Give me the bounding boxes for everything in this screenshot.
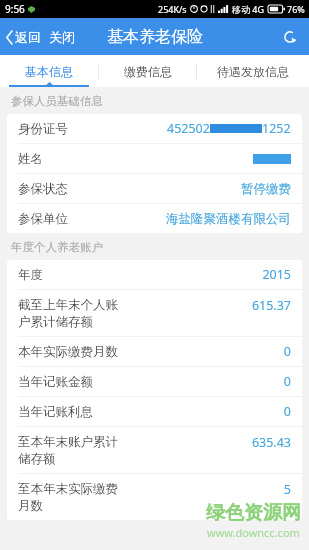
staticText: 参保状态 bbox=[18, 181, 68, 197]
staticText: 身份证号 bbox=[18, 121, 68, 137]
button[interactable]: 截至上年末个人账 户累计储存额 bbox=[7, 290, 302, 336]
staticText: 至本年末账户累计 储存额 bbox=[18, 434, 118, 466]
staticText: 暂停缴费 bbox=[241, 181, 291, 197]
staticText: 年度 bbox=[18, 267, 43, 283]
staticText: 参保单位 bbox=[18, 211, 68, 227]
staticText: 缴费信息 bbox=[124, 64, 172, 79]
button[interactable]: 缴费信息 bbox=[99, 55, 196, 87]
button[interactable]: 关闭 bbox=[45, 24, 79, 50]
staticText: 至本年末实际缴费 月数 bbox=[18, 481, 118, 513]
staticText: 当年记账利息 bbox=[18, 404, 93, 420]
staticText: 移动 4G bbox=[232, 3, 265, 15]
staticText: 姓名 bbox=[18, 151, 43, 167]
staticText: 0 bbox=[283, 373, 291, 390]
staticText: 615.37 bbox=[251, 297, 291, 314]
staticText: 本年实际缴费月数 bbox=[18, 344, 118, 360]
button[interactable]: 参保状态 bbox=[7, 174, 302, 203]
button[interactable]: 待遇发放信息 bbox=[197, 55, 309, 87]
staticText: 基本养老保险 bbox=[107, 27, 203, 47]
staticText: 基本信息 bbox=[25, 64, 73, 79]
staticText: www.downcc.com bbox=[207, 525, 300, 540]
button[interactable]: 当年记账利息 bbox=[7, 397, 302, 426]
staticText: 海盐隆聚酒楼有限公司 bbox=[166, 211, 291, 227]
button[interactable]: 身份证号 bbox=[7, 114, 302, 143]
staticText: 9:56 bbox=[5, 2, 25, 16]
staticText: 年度个人养老账户 bbox=[11, 240, 103, 254]
staticText: 76% bbox=[287, 3, 305, 15]
button[interactable]: 本年实际缴费月数 bbox=[7, 337, 302, 366]
staticText: 5 bbox=[283, 481, 291, 498]
staticText: 0 bbox=[283, 343, 291, 360]
button[interactable]: 当年记账金额 bbox=[7, 367, 302, 396]
button[interactable]: 年度 bbox=[7, 260, 302, 289]
staticText: 关闭 bbox=[49, 29, 75, 45]
staticText: 待遇发放信息 bbox=[217, 64, 289, 79]
button[interactable]: 至本年末实际缴费 月数 bbox=[7, 474, 302, 520]
staticText: 返回 bbox=[15, 29, 41, 45]
staticText: 当年记账金额 bbox=[18, 374, 93, 390]
button[interactable]: 姓名 bbox=[7, 144, 302, 173]
button[interactable]: 基本信息 bbox=[0, 55, 98, 87]
staticText: 绿色资源网 bbox=[206, 501, 301, 525]
staticText: 截至上年末个人账 户累计储存额 bbox=[18, 297, 118, 329]
button[interactable]: 至本年末账户累计 储存额 bbox=[7, 427, 302, 473]
staticText: 参保人员基础信息 bbox=[11, 94, 103, 108]
button[interactable]: Refresh bbox=[277, 24, 303, 50]
staticText: 635.43 bbox=[251, 434, 291, 451]
staticText: 1252 bbox=[262, 120, 291, 137]
staticText: 0 bbox=[283, 403, 291, 420]
staticText: 452502 bbox=[167, 120, 210, 137]
button[interactable]: 返回 bbox=[0, 24, 46, 50]
button[interactable]: 参保单位 bbox=[7, 204, 302, 233]
staticText: 2015 bbox=[262, 266, 291, 283]
staticText: 254K/s bbox=[158, 3, 187, 15]
